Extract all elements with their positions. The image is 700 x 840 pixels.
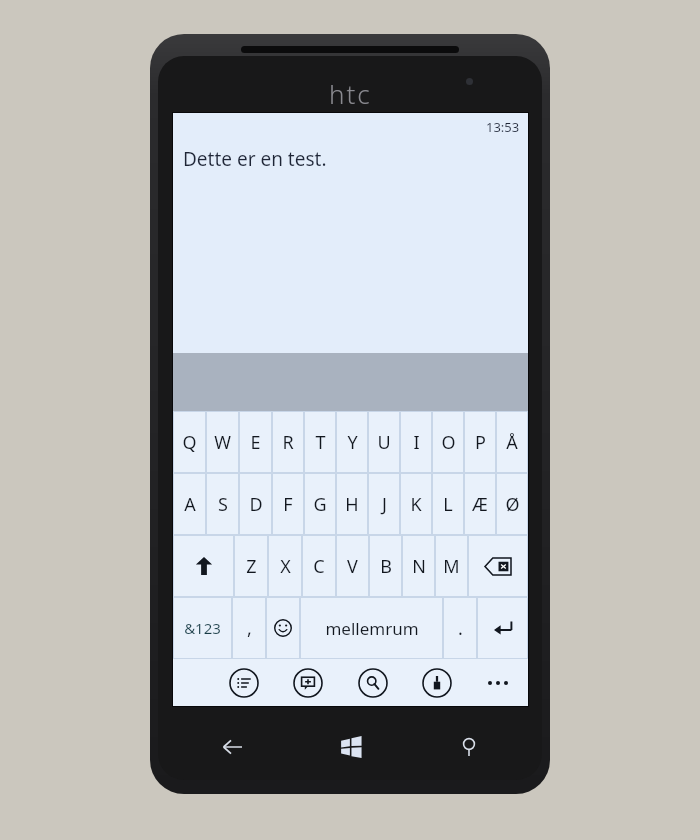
button[interactable]: Backspace: [469, 536, 527, 596]
staticText: V: [347, 554, 358, 579]
button[interactable]: Add to dictionary: [293, 668, 323, 698]
staticText: Y: [347, 430, 358, 455]
button[interactable]: K: [401, 474, 431, 534]
button[interactable]: M: [436, 536, 467, 596]
staticText: I: [413, 430, 420, 455]
button[interactable]: U: [369, 412, 399, 472]
button[interactable]: Back: [172, 724, 291, 770]
staticText: Z: [246, 554, 257, 579]
button[interactable]: Emoji: [267, 598, 299, 658]
button[interactable]: V: [337, 536, 368, 596]
button[interactable]: T: [305, 412, 335, 472]
staticText: mellemrum: [325, 617, 419, 640]
button[interactable]: Start: [291, 724, 410, 770]
button[interactable]: Search: [358, 668, 388, 698]
button[interactable]: G: [305, 474, 335, 534]
button[interactable]: More options: [488, 681, 508, 685]
staticText: S: [218, 492, 228, 517]
button[interactable]: E: [240, 412, 271, 472]
staticText: Q: [182, 430, 197, 455]
button[interactable]: Enter: [478, 598, 527, 658]
staticText: X: [280, 554, 291, 579]
staticText: J: [382, 492, 387, 517]
button[interactable]: Ø: [497, 474, 527, 534]
button[interactable]: H: [337, 474, 367, 534]
button[interactable]: Dette er en test.: [183, 146, 327, 172]
button[interactable]: &123: [174, 598, 231, 658]
button[interactable]: N: [403, 536, 434, 596]
staticText: .: [458, 616, 463, 641]
staticText: D: [249, 492, 263, 517]
staticText: 13:53: [486, 118, 520, 136]
button[interactable]: O: [433, 412, 463, 472]
button[interactable]: mellemrum: [301, 598, 442, 658]
button[interactable]: F: [273, 474, 303, 534]
button[interactable]: Handwriting: [422, 668, 452, 698]
staticText: C: [313, 554, 325, 579]
button[interactable]: .: [444, 598, 476, 658]
staticText: R: [282, 430, 294, 455]
staticText: U: [377, 430, 391, 455]
button[interactable]: I: [401, 412, 431, 472]
staticText: G: [313, 492, 327, 517]
button[interactable]: Æ: [465, 474, 495, 534]
button[interactable]: Å: [497, 412, 527, 472]
staticText: &123: [184, 618, 221, 638]
staticText: F: [283, 492, 293, 517]
staticText: B: [380, 554, 392, 579]
button[interactable]: X: [269, 536, 301, 596]
staticText: M: [443, 554, 460, 579]
button[interactable]: Shift: [174, 536, 233, 596]
button[interactable]: A: [174, 474, 205, 534]
button[interactable]: W: [207, 412, 238, 472]
button[interactable]: P: [465, 412, 495, 472]
staticText: Ø: [505, 492, 520, 517]
staticText: htc: [329, 76, 372, 111]
staticText: T: [315, 430, 326, 455]
button[interactable]: J: [369, 474, 399, 534]
button[interactable]: C: [303, 536, 335, 596]
button[interactable]: L: [433, 474, 463, 534]
button[interactable]: Q: [174, 412, 205, 472]
staticText: Æ: [472, 492, 488, 517]
staticText: H: [345, 492, 359, 517]
button[interactable]: ,: [233, 598, 265, 658]
staticText: Å: [506, 430, 518, 455]
staticText: E: [250, 430, 261, 455]
button[interactable]: Search: [410, 724, 529, 770]
staticText: N: [412, 554, 426, 579]
button[interactable]: D: [240, 474, 271, 534]
button[interactable]: Text suggestions: [229, 668, 259, 698]
button[interactable]: R: [273, 412, 303, 472]
button[interactable]: B: [370, 536, 401, 596]
staticText: O: [441, 430, 456, 455]
staticText: W: [214, 430, 231, 455]
staticText: ,: [247, 616, 252, 641]
button[interactable]: Z: [235, 536, 267, 596]
staticText: L: [443, 492, 453, 517]
staticText: K: [410, 492, 422, 517]
button[interactable]: S: [207, 474, 238, 534]
button[interactable]: Y: [337, 412, 367, 472]
staticText: P: [475, 430, 486, 455]
staticText: A: [184, 492, 196, 517]
